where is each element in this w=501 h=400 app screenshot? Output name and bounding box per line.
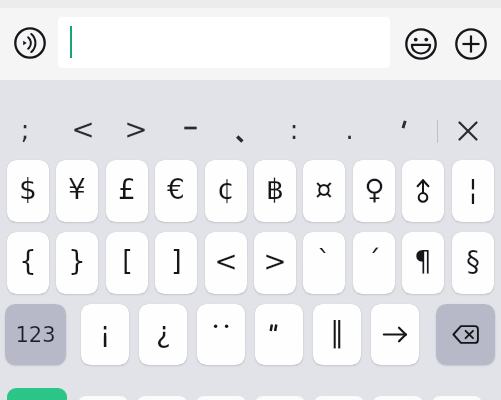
staticText: $ — [19, 173, 37, 206]
button[interactable]: < — [205, 232, 247, 294]
staticText: ¢ — [217, 173, 235, 206]
button[interactable]: ] — [155, 232, 197, 294]
staticText: ¡ — [99, 316, 111, 349]
button[interactable]: $ — [7, 160, 49, 222]
button[interactable]: § — [452, 232, 494, 294]
button[interactable]: . — [323, 105, 375, 159]
staticText: ♀ — [364, 173, 385, 206]
button[interactable] — [196, 396, 246, 400]
button[interactable]: Add attachment — [455, 28, 487, 60]
button[interactable]: ¶ — [402, 232, 444, 294]
button[interactable] — [378, 105, 430, 159]
staticText: ¦ — [468, 173, 478, 206]
staticText: . — [345, 114, 354, 145]
button[interactable]: ¿ — [139, 304, 187, 365]
button[interactable] — [255, 304, 303, 365]
staticText: : — [289, 114, 299, 145]
staticText: ¤ — [315, 173, 333, 206]
button[interactable]: ‖ — [313, 304, 361, 365]
button[interactable]: £ — [106, 160, 148, 222]
button[interactable]: { — [7, 232, 49, 294]
staticText: } — [68, 245, 86, 278]
staticText: ¿ — [156, 316, 171, 349]
button[interactable] — [314, 396, 364, 400]
button[interactable] — [58, 17, 390, 68]
staticText: ¥ — [68, 173, 86, 206]
staticText: ` — [317, 245, 331, 278]
staticText: ´ — [367, 245, 381, 278]
button[interactable]: € — [155, 160, 197, 222]
button[interactable] — [371, 304, 419, 365]
staticText: < — [71, 113, 95, 146]
button[interactable] — [432, 396, 482, 400]
staticText: ฿ — [266, 173, 284, 206]
button[interactable]: > — [254, 232, 296, 294]
button[interactable] — [255, 396, 305, 400]
button[interactable]: Backspace — [436, 304, 495, 365]
button[interactable]: 123 — [5, 304, 66, 365]
button[interactable]: > — [110, 105, 162, 159]
button[interactable] — [164, 105, 216, 159]
button[interactable]: ♀ — [353, 160, 395, 222]
button[interactable]: ฿ — [254, 160, 296, 222]
button[interactable]: Voice message — [14, 27, 46, 59]
staticText: > — [263, 245, 287, 278]
staticText: [ — [122, 245, 133, 278]
button[interactable]: ¡ — [81, 304, 129, 365]
staticText: > — [124, 113, 148, 146]
button[interactable]: ; — [0, 105, 51, 159]
staticText: ] — [171, 245, 182, 278]
button[interactable]: : — [268, 105, 320, 159]
button[interactable] — [137, 396, 187, 400]
button[interactable]: Emoji — [405, 28, 437, 60]
staticText: ‖ — [330, 316, 344, 349]
button[interactable]: < — [57, 105, 109, 159]
staticText: { — [19, 245, 37, 278]
button[interactable]: } — [56, 232, 98, 294]
button[interactable] — [373, 396, 423, 400]
button[interactable]: ¥ — [56, 160, 98, 222]
staticText: § — [466, 245, 480, 278]
button[interactable]: ´ — [353, 232, 395, 294]
button[interactable] — [7, 388, 67, 400]
button[interactable] — [402, 160, 444, 222]
button[interactable]: ` — [303, 232, 345, 294]
staticText: < — [214, 245, 238, 278]
staticText: ; — [20, 114, 30, 145]
button[interactable]: ¤ — [303, 160, 345, 222]
button[interactable] — [197, 304, 245, 365]
staticText: 123 — [15, 323, 56, 347]
button[interactable]: Close keyboard — [444, 104, 492, 158]
button[interactable] — [78, 396, 128, 400]
staticText: £ — [118, 173, 136, 206]
button[interactable] — [214, 105, 266, 159]
staticText: € — [167, 173, 185, 206]
button[interactable]: ¢ — [205, 160, 247, 222]
staticText: ¶ — [414, 245, 432, 278]
button[interactable]: [ — [106, 232, 148, 294]
button[interactable]: ¦ — [452, 160, 494, 222]
